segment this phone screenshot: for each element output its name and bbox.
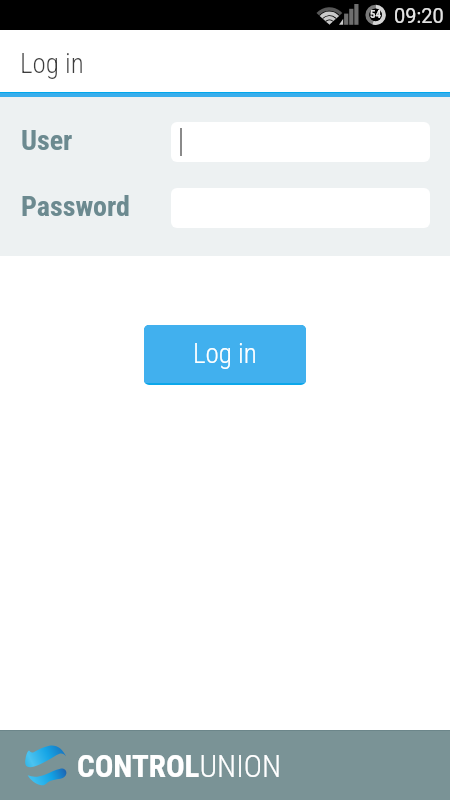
- staticText: Log in: [193, 338, 257, 370]
- staticText: 54: [370, 8, 382, 21]
- button[interactable]: Log in: [144, 325, 306, 385]
- button[interactable]: User input field: [171, 122, 430, 162]
- staticText: Log in: [20, 48, 84, 80]
- staticText: CONTROLUNION: [77, 748, 282, 784]
- staticText: User: [21, 124, 73, 157]
- staticText: 09:20: [394, 4, 444, 27]
- staticText: Password: [21, 190, 130, 223]
